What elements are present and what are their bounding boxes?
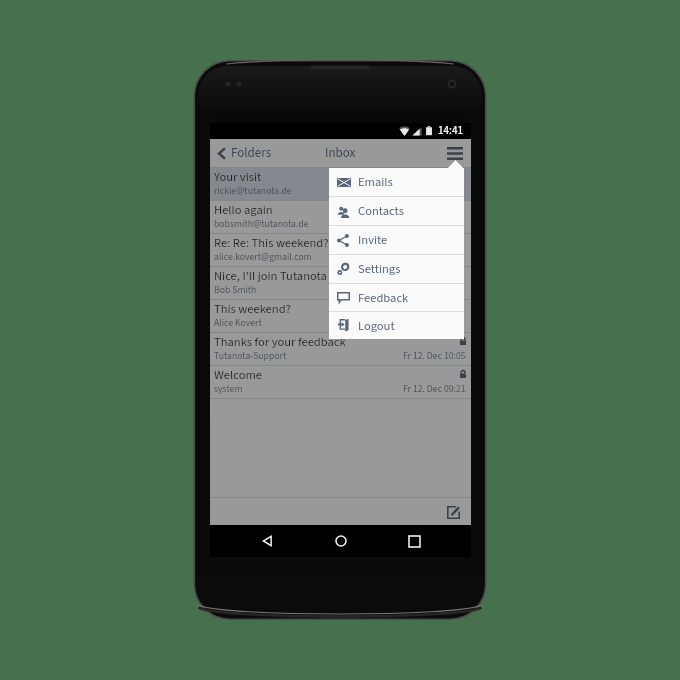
staticText: Welcome (214, 366, 262, 382)
staticText: Contacts (358, 202, 404, 220)
button[interactable]: Settings (329, 255, 464, 283)
staticText: Your visit (214, 168, 262, 184)
staticText: Re: Re: This weekend? (214, 234, 329, 250)
button[interactable]: Contacts (329, 197, 464, 225)
button[interactable]: Emails (329, 168, 464, 196)
staticText: Invite (358, 231, 388, 249)
button[interactable]: Menu (442, 140, 468, 166)
staticText: bobsmith@tutanota.de (214, 217, 309, 231)
staticText: Thanks for your feedback (214, 333, 346, 349)
button[interactable]: Thanks for your feedback (210, 333, 471, 365)
staticText: Nice, I'll join Tutanota (214, 267, 327, 283)
button[interactable]: Home (324, 525, 358, 557)
staticText: alice.kovert@gmail.com (214, 250, 312, 264)
staticText: Feedback (358, 289, 409, 307)
staticText: Hello again (214, 201, 273, 217)
button[interactable]: This weekend? (210, 300, 471, 332)
staticText: Folders (231, 144, 272, 163)
button[interactable]: Logout (329, 312, 464, 339)
staticText: 14:41 (438, 123, 464, 139)
staticText: This weekend? (214, 300, 291, 316)
staticText: Emails (358, 173, 393, 191)
button[interactable]: Compose new mail (443, 502, 463, 522)
staticText: Settings (358, 260, 401, 278)
staticText: Inbox (325, 144, 356, 163)
staticText: rickie@tutanota.de (214, 184, 292, 198)
staticText: Fr 12. Dec 10:05 (403, 349, 466, 363)
staticText: system (214, 382, 243, 396)
staticText: Tutanota-Support (214, 349, 287, 363)
button[interactable]: Your visit (210, 168, 471, 200)
button[interactable]: Invite (329, 226, 464, 254)
staticText: Alice Kovert (214, 316, 262, 330)
staticText: Logout (358, 317, 395, 335)
button[interactable]: Recents (397, 525, 431, 557)
button[interactable]: Back (250, 525, 284, 557)
button[interactable]: Folders (214, 144, 275, 163)
button[interactable]: Welcome (210, 366, 471, 398)
button[interactable]: Nice, I'll join Tutanota (210, 267, 471, 299)
button[interactable]: Feedback (329, 284, 464, 311)
button[interactable]: Re: Re: This weekend? (210, 234, 471, 266)
staticText: Bob Smith (214, 283, 257, 297)
staticText: Fr 12. Dec 09:21 (403, 382, 466, 396)
button[interactable]: Hello again (210, 201, 471, 233)
